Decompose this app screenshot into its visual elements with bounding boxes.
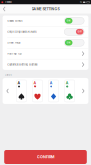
button[interactable]: Previous card deck	[5, 85, 10, 97]
button[interactable]: CONFIRM	[4, 150, 87, 164]
staticText: A	[34, 81, 37, 85]
staticText: ChoBoo	[4, 1, 11, 4]
button[interactable]: Sound Effects	[3, 15, 88, 26]
button[interactable]: Chips Display(B/K/M/B)	[3, 26, 88, 37]
staticText: Auto Top Up	[7, 52, 22, 55]
staticText: ON	[67, 41, 71, 44]
button[interactable]: Smart Focus	[3, 37, 88, 48]
staticText: Sound Effects	[7, 19, 22, 22]
staticText: A	[66, 81, 69, 85]
staticText: Smart Focus	[7, 41, 20, 44]
button[interactable]: Next card deck	[81, 85, 86, 97]
staticText: Cards	[5, 73, 12, 76]
staticText: Customize Betting Buttons	[7, 63, 37, 66]
staticText: OFF	[78, 30, 82, 33]
button[interactable]: Back	[0, 5, 9, 13]
staticText: CONFIRM	[37, 155, 54, 159]
button[interactable]: Customize Betting Buttons	[3, 59, 88, 70]
staticText: ON	[67, 20, 71, 22]
staticText: A	[17, 81, 20, 85]
button[interactable]: Auto Top Up	[3, 48, 88, 59]
staticText: GAME SETTINGS	[31, 7, 59, 11]
staticText: Chips Display(B/K/M/B)	[7, 30, 37, 33]
staticText: 4G	[80, 1, 82, 3]
staticText: A	[50, 81, 53, 85]
